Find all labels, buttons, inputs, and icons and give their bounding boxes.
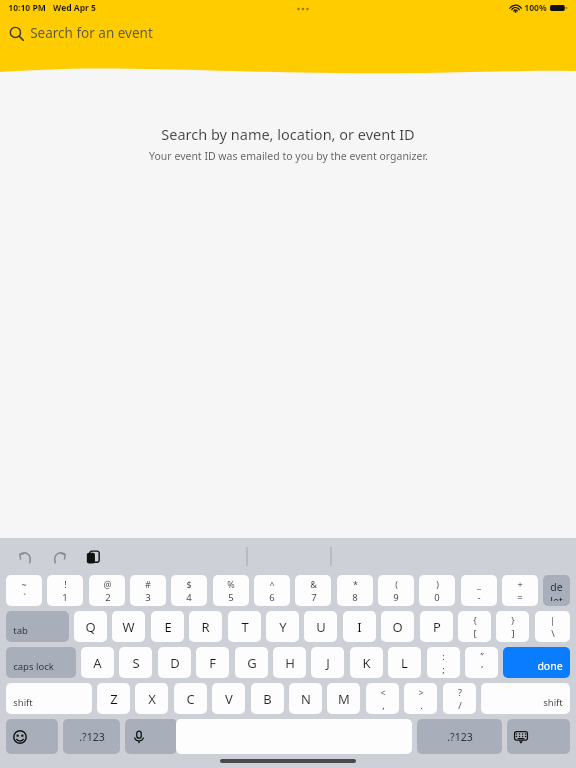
staticText: B <box>263 690 272 708</box>
button[interactable]: C <box>174 683 207 714</box>
button[interactable]: D <box>158 647 191 678</box>
staticText: ] <box>511 627 515 640</box>
staticText: P <box>433 618 441 636</box>
button[interactable]: E <box>151 611 184 642</box>
button[interactable]: shift <box>481 683 570 714</box>
button[interactable]: U <box>304 611 337 642</box>
button[interactable]: done <box>503 647 570 678</box>
staticText: .?123 <box>447 730 473 744</box>
button[interactable]: & <box>295 575 331 606</box>
button[interactable]: % <box>213 575 249 606</box>
button[interactable]: @ <box>89 575 125 606</box>
staticText: 5 <box>228 591 234 604</box>
button[interactable]: .?123 <box>63 719 120 754</box>
staticText: | <box>550 614 555 626</box>
staticText: + <box>517 578 523 590</box>
button[interactable]: + <box>502 575 538 606</box>
button[interactable]: F <box>196 647 229 678</box>
staticText: X <box>148 690 156 708</box>
button[interactable]: G <box>235 647 268 678</box>
button[interactable]: | <box>535 611 570 642</box>
button[interactable]: tab <box>6 611 69 642</box>
button[interactable]: > <box>404 683 437 714</box>
button[interactable]: H <box>273 647 306 678</box>
staticText: Search by name, location, or event ID <box>161 124 415 144</box>
staticText: 6 <box>269 591 275 604</box>
button[interactable]: delete <box>543 575 570 606</box>
button[interactable]: Q <box>74 611 107 642</box>
staticText: < <box>380 686 386 698</box>
button[interactable]: caps lock <box>6 647 76 678</box>
button[interactable]: L <box>388 647 421 678</box>
button[interactable]: shift <box>6 683 92 714</box>
staticText: I <box>357 618 362 636</box>
button[interactable]: $ <box>171 575 207 606</box>
button[interactable]: ? <box>443 683 476 714</box>
staticText: & <box>310 578 317 590</box>
button[interactable]: ~ <box>6 575 42 606</box>
staticText: O <box>392 618 403 636</box>
button[interactable]: Z <box>97 683 130 714</box>
staticText: M <box>338 690 350 708</box>
button[interactable]: T <box>228 611 261 642</box>
staticText: caps lock <box>13 660 54 673</box>
staticText: G <box>247 654 257 672</box>
button[interactable]: : <box>427 647 460 678</box>
button[interactable]: } <box>496 611 529 642</box>
button[interactable]: K <box>350 647 383 678</box>
staticText: A <box>93 654 102 672</box>
button[interactable]: J <box>311 647 344 678</box>
button[interactable]: M <box>327 683 360 714</box>
button[interactable]: { <box>458 611 491 642</box>
staticText: 8 <box>352 591 358 604</box>
button[interactable]: Voice input <box>125 719 177 754</box>
button[interactable]: I <box>343 611 376 642</box>
staticText: @ <box>103 578 112 590</box>
button[interactable]: Redo <box>46 544 72 570</box>
button[interactable]: .?123 <box>417 719 502 754</box>
button[interactable]: # <box>130 575 166 606</box>
button[interactable]: Undo <box>12 544 38 570</box>
button[interactable]: < <box>366 683 399 714</box>
button[interactable]: _ <box>461 575 497 606</box>
staticText: { <box>473 614 477 626</box>
staticText: > <box>418 686 424 698</box>
staticText: ” <box>480 650 484 662</box>
button[interactable]: Search <box>0 18 576 48</box>
button[interactable]: S <box>119 647 152 678</box>
button[interactable]: N <box>289 683 322 714</box>
button[interactable]: Y <box>266 611 299 642</box>
staticText: shift <box>543 696 563 709</box>
button[interactable]: * <box>337 575 373 606</box>
staticText: Search for an event <box>30 24 153 42</box>
button[interactable]: P <box>420 611 453 642</box>
button[interactable]: O <box>381 611 414 642</box>
staticText: 0 <box>434 591 440 604</box>
button[interactable]: ” <box>465 647 498 678</box>
button[interactable]: ( <box>378 575 414 606</box>
staticText: Q <box>85 618 96 636</box>
button[interactable]: V <box>212 683 245 714</box>
staticText: ~ <box>21 578 27 590</box>
staticText: } <box>511 614 515 626</box>
button[interactable]: ^ <box>254 575 290 606</box>
staticText: * <box>353 578 358 590</box>
staticText: , <box>382 699 385 712</box>
button[interactable]: R <box>189 611 222 642</box>
staticText: % <box>227 578 235 590</box>
staticText: J <box>326 654 330 672</box>
button[interactable]: Hide keyboard <box>507 719 570 754</box>
button[interactable]: A <box>81 647 114 678</box>
staticText: ’ <box>481 663 483 676</box>
button[interactable]: ) <box>419 575 455 606</box>
staticText: [ <box>473 627 477 640</box>
button[interactable]: W <box>112 611 145 642</box>
button[interactable]: B <box>251 683 284 714</box>
staticText: = <box>517 591 523 604</box>
button[interactable]: ! <box>47 575 83 606</box>
staticText: N <box>301 690 311 708</box>
button[interactable]: Paste <box>80 544 106 570</box>
button[interactable]: X <box>135 683 168 714</box>
button[interactable]: Emoji <box>6 719 58 754</box>
